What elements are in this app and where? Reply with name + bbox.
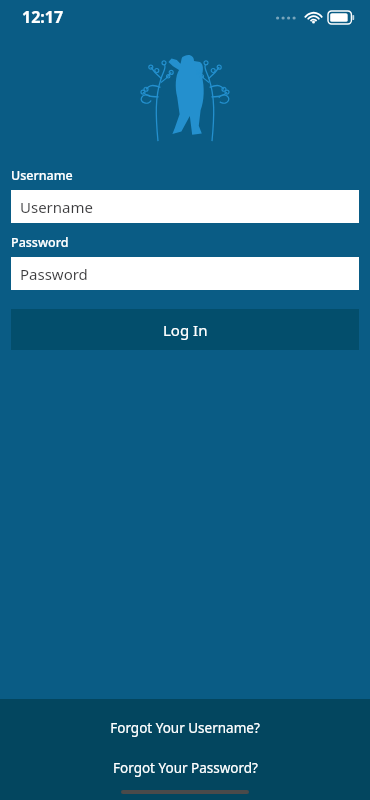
button[interactable]: Forgot Your Password?: [0, 755, 370, 781]
button[interactable]: Log In: [11, 309, 359, 350]
staticText: Forgot Your Password?: [113, 759, 258, 777]
button[interactable]: Password: [11, 257, 359, 290]
staticText: Username: [20, 197, 93, 217]
other: Home indicator: [121, 790, 249, 794]
staticText: Username: [11, 167, 73, 184]
button[interactable]: Forgot Your Username?: [0, 713, 370, 743]
staticText: 12:17: [22, 6, 64, 28]
staticText: Forgot Your Username?: [110, 719, 260, 737]
staticText: Password: [11, 234, 69, 251]
staticText: Log In: [163, 320, 208, 340]
button[interactable]: Username: [11, 190, 359, 223]
staticText: Password: [20, 264, 88, 284]
